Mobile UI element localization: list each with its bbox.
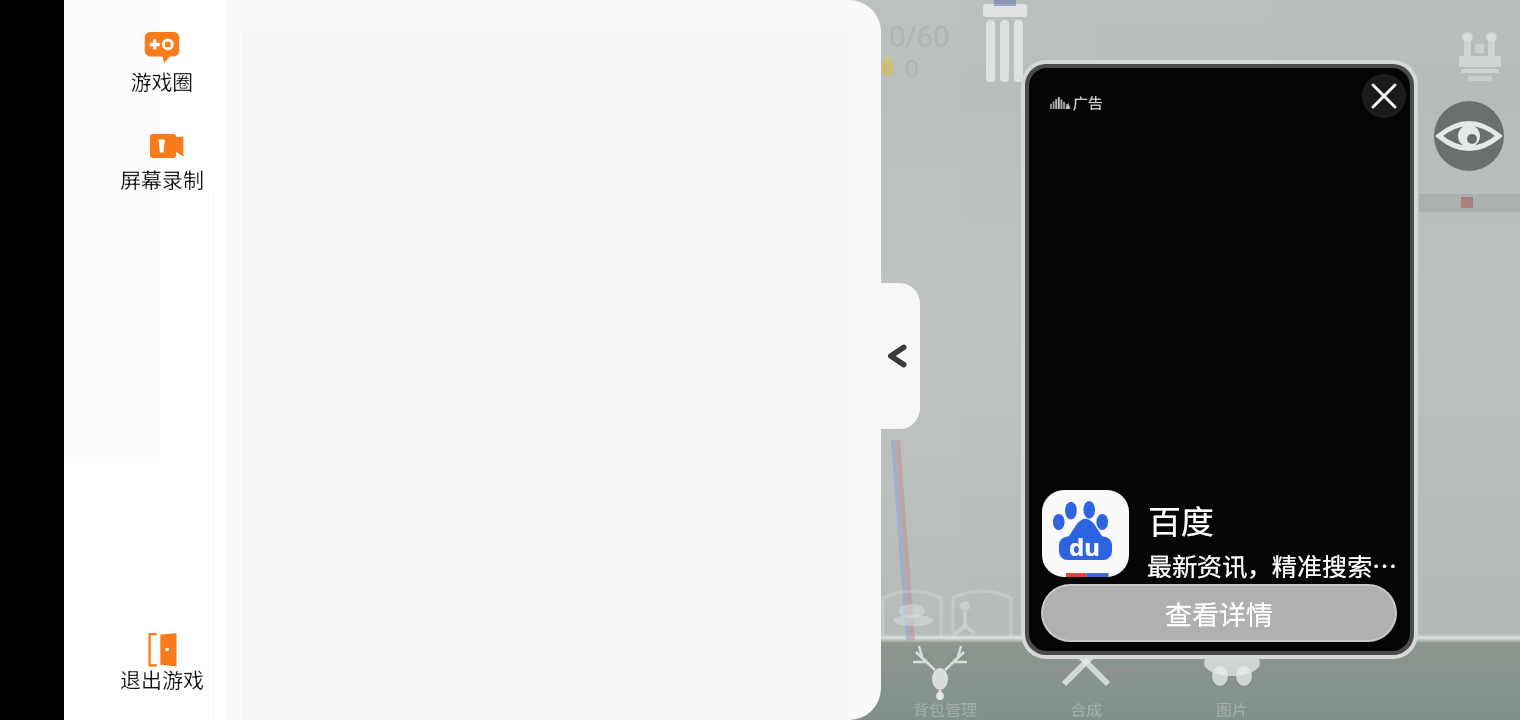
staticText: 最新资讯，精准搜索… [1147, 547, 1398, 583]
button[interactable]: 游戏圈 [64, 21, 226, 100]
staticText: 退出游戏 [81, 664, 243, 694]
button[interactable]: 查看详情 [1043, 586, 1395, 640]
button[interactable]: Close ad [1362, 74, 1406, 118]
staticText: 广告 [1073, 92, 1104, 114]
staticText: 图片 [1216, 697, 1249, 720]
staticText: 屏幕录制 [81, 164, 243, 194]
staticText: 合成 [1070, 697, 1103, 720]
button[interactable]: 屏幕录制 [64, 119, 226, 198]
staticText: du [1069, 530, 1100, 563]
staticText: 游戏圈 [81, 66, 243, 96]
staticText: 查看详情 [1165, 594, 1273, 633]
staticText: 百度 [1148, 496, 1214, 544]
staticText: 0 [905, 51, 919, 84]
button[interactable]: Collapse panel [879, 283, 920, 429]
staticText: 背包管理 [913, 697, 978, 720]
button[interactable]: 退出游戏 [64, 619, 226, 698]
staticText: 0/60 [889, 16, 950, 55]
